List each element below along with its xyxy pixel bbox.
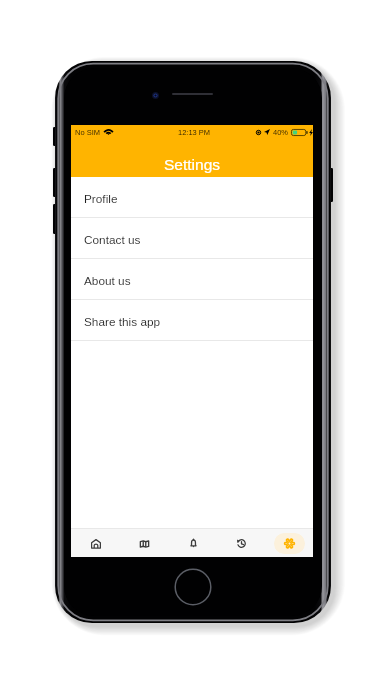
staticText: Contact us — [84, 233, 141, 246]
button[interactable]: Share this app — [71, 300, 313, 341]
staticText: No SIM — [75, 128, 101, 136]
button[interactable]: Map — [120, 529, 169, 557]
staticText: Profile — [84, 192, 118, 205]
staticText: 40% — [273, 128, 289, 136]
button[interactable]: Profile — [71, 177, 313, 218]
staticText: Settings — [164, 156, 221, 173]
staticText: 12:13 PM — [178, 128, 211, 136]
staticText: About us — [84, 274, 131, 287]
button[interactable]: Settings — [265, 529, 313, 557]
staticText: Share this app — [84, 315, 161, 328]
button[interactable]: Contact us — [71, 218, 313, 259]
button[interactable]: History — [217, 529, 265, 557]
button[interactable]: About us — [71, 259, 313, 300]
button[interactable]: Home — [71, 529, 120, 557]
button[interactable]: Notifications — [169, 529, 217, 557]
